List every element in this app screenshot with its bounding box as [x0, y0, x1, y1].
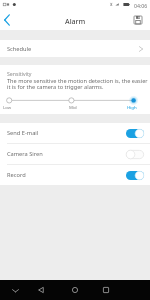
- staticText: Sensitivity: [7, 70, 32, 77]
- button[interactable]: Save: [132, 14, 144, 26]
- staticText: The more sensitive the motion detection …: [7, 77, 148, 91]
- staticText: Low: [3, 104, 12, 110]
- button[interactable]: Schedule: [0, 40, 150, 57]
- button[interactable]: Off: [126, 150, 144, 159]
- staticText: Camera Siren: [7, 150, 43, 158]
- button[interactable]: Hide navigation bar: [9, 284, 21, 296]
- button[interactable]: Send E-mail: [0, 123, 150, 143]
- button[interactable]: Camera Siren: [0, 144, 150, 164]
- button[interactable]: On: [126, 129, 144, 138]
- staticText: Schedule: [7, 45, 32, 53]
- button[interactable]: Back: [0, 12, 16, 28]
- button[interactable]: Back: [30, 280, 52, 300]
- staticText: High: [127, 104, 137, 110]
- staticText: Alarm: [65, 16, 86, 26]
- staticText: Mid: [69, 104, 77, 110]
- button[interactable]: Home: [64, 280, 86, 300]
- button[interactable]: On: [126, 171, 144, 180]
- button[interactable]: Recent apps: [95, 280, 117, 300]
- staticText: 04:06: [134, 2, 148, 9]
- button[interactable]: Record: [0, 165, 150, 185]
- staticText: Send E-mail: [7, 129, 39, 137]
- staticText: Record: [7, 171, 26, 179]
